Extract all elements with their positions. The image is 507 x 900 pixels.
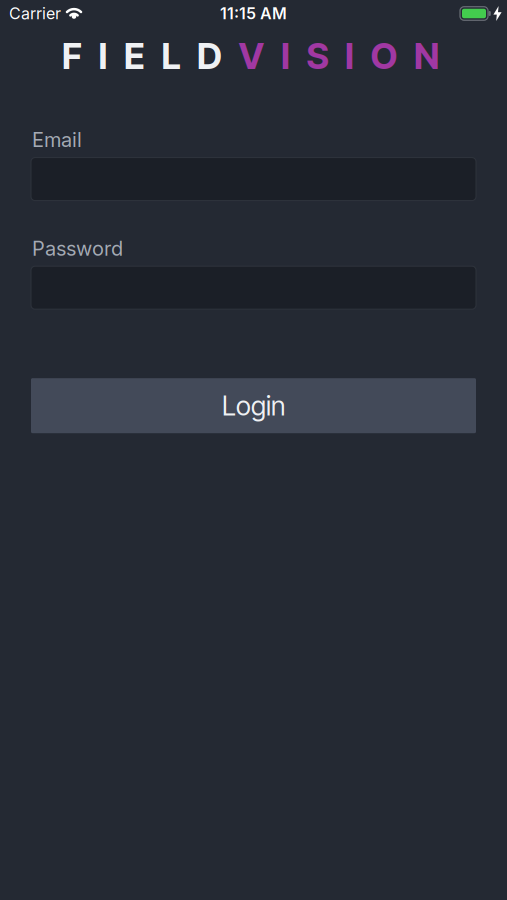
staticText: Password (32, 237, 123, 260)
staticText: S (306, 34, 328, 78)
button[interactable]: Email (31, 158, 476, 201)
staticText: D (197, 34, 222, 78)
staticText: I (98, 34, 107, 78)
staticText: Login (222, 390, 285, 422)
staticText: 11:15 AM (220, 4, 287, 23)
staticText: I (281, 34, 290, 78)
button[interactable]: Login (31, 378, 476, 433)
staticText: F (62, 34, 82, 78)
staticText: O (370, 34, 397, 78)
staticText: Carrier (9, 4, 61, 23)
staticText: V (238, 34, 264, 78)
staticText: E (124, 34, 145, 78)
staticText: L (161, 34, 180, 78)
staticText: N (414, 34, 439, 78)
staticText: I (345, 34, 354, 78)
staticText: Email (32, 128, 82, 152)
